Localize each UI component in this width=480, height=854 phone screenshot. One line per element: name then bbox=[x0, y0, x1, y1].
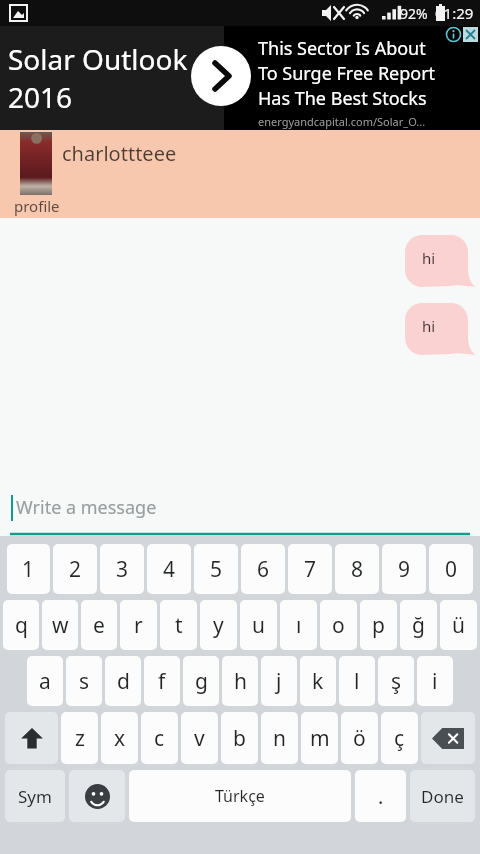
button[interactable]: x bbox=[101, 712, 138, 764]
staticText: r bbox=[134, 611, 143, 640]
button[interactable]: ş bbox=[378, 656, 414, 706]
staticText: a bbox=[39, 667, 51, 696]
button[interactable]: 7 bbox=[288, 544, 332, 594]
staticText: Türkçe bbox=[215, 785, 265, 807]
button[interactable]: ç bbox=[381, 712, 418, 764]
button[interactable]: 9 bbox=[382, 544, 426, 594]
staticText: j bbox=[276, 667, 282, 696]
button[interactable]: Advertisement bbox=[0, 26, 480, 130]
staticText: i bbox=[432, 667, 438, 696]
button[interactable]: z bbox=[61, 712, 98, 764]
button[interactable]: i bbox=[417, 656, 453, 706]
staticText: Sym bbox=[18, 785, 52, 808]
button[interactable]: Write a message bbox=[0, 483, 480, 536]
staticText: To Surge Free Report bbox=[258, 61, 436, 86]
staticText: 0 bbox=[445, 555, 458, 584]
staticText: energyandcapital.com/Solar_O... bbox=[258, 114, 426, 129]
button[interactable]: Ad info bbox=[446, 27, 461, 42]
button[interactable]: r bbox=[120, 600, 157, 650]
staticText: x bbox=[114, 724, 126, 753]
button[interactable]: f bbox=[144, 656, 180, 706]
button[interactable]: 0 bbox=[429, 544, 473, 594]
button[interactable]: Türkçe bbox=[129, 770, 351, 822]
staticText: t bbox=[175, 611, 183, 640]
button[interactable]: o bbox=[320, 600, 357, 650]
button[interactable]: 5 bbox=[194, 544, 238, 594]
button[interactable]: u bbox=[240, 600, 277, 650]
button[interactable]: y bbox=[200, 600, 237, 650]
button[interactable]: Shift bbox=[5, 712, 58, 764]
staticText: Write a message bbox=[16, 495, 157, 520]
button[interactable]: c bbox=[141, 712, 178, 764]
button[interactable]: ğ bbox=[400, 600, 437, 650]
staticText: 2 bbox=[69, 555, 82, 584]
button[interactable]: 8 bbox=[335, 544, 379, 594]
staticText: u bbox=[252, 611, 265, 640]
button[interactable]: Close ad bbox=[463, 27, 478, 42]
button[interactable]: 6 bbox=[241, 544, 285, 594]
staticText: ş bbox=[391, 667, 402, 696]
staticText: n bbox=[273, 724, 286, 753]
staticText: y bbox=[213, 611, 224, 640]
staticText: hi bbox=[422, 316, 436, 336]
button[interactable]: l bbox=[339, 656, 375, 706]
button[interactable]: a bbox=[27, 656, 63, 706]
button[interactable]: 2 bbox=[53, 544, 97, 594]
button[interactable]: . bbox=[355, 770, 406, 822]
staticText: ı bbox=[296, 611, 302, 640]
staticText: v bbox=[194, 724, 205, 753]
button[interactable]: 1 bbox=[7, 544, 50, 594]
button[interactable]: ı bbox=[280, 600, 317, 650]
button[interactable]: hi bbox=[405, 303, 477, 355]
button[interactable]: Done bbox=[410, 770, 475, 822]
button[interactable]: s bbox=[66, 656, 102, 706]
button[interactable]: hi bbox=[405, 235, 477, 287]
staticText: f bbox=[158, 667, 166, 696]
button[interactable]: p bbox=[360, 600, 397, 650]
staticText: b bbox=[233, 724, 246, 753]
staticText: 9 bbox=[398, 555, 411, 584]
button[interactable]: Sym bbox=[5, 770, 65, 822]
button[interactable]: charlottteee bbox=[0, 130, 480, 218]
button[interactable]: k bbox=[300, 656, 336, 706]
button[interactable]: h bbox=[222, 656, 258, 706]
button[interactable]: ö bbox=[341, 712, 378, 764]
button[interactable]: 3 bbox=[100, 544, 144, 594]
staticText: ö bbox=[353, 724, 366, 753]
staticText: profile bbox=[14, 196, 60, 216]
staticText: 01:29 bbox=[435, 3, 474, 23]
staticText: 6 bbox=[257, 555, 270, 584]
button[interactable]: w bbox=[42, 600, 78, 650]
staticText: ü bbox=[452, 611, 465, 640]
button[interactable]: ü bbox=[440, 600, 477, 650]
staticText: 7 bbox=[304, 555, 317, 584]
staticText: h bbox=[234, 667, 247, 696]
staticText: . bbox=[378, 783, 384, 810]
staticText: e bbox=[93, 611, 105, 640]
staticText: Solar Outlook bbox=[8, 40, 188, 78]
button[interactable]: v bbox=[181, 712, 218, 764]
staticText: hi bbox=[422, 248, 436, 268]
button[interactable]: t bbox=[160, 600, 197, 650]
button[interactable]: d bbox=[105, 656, 141, 706]
staticText: 2016 bbox=[8, 78, 73, 116]
button[interactable]: Emoji bbox=[69, 770, 125, 822]
button[interactable]: q bbox=[3, 600, 39, 650]
button[interactable]: e bbox=[81, 600, 117, 650]
button[interactable]: 4 bbox=[147, 544, 191, 594]
button[interactable]: n bbox=[261, 712, 298, 764]
button[interactable]: m bbox=[301, 712, 338, 764]
staticText: c bbox=[154, 724, 165, 753]
button[interactable]: Backspace bbox=[421, 712, 475, 764]
button[interactable]: j bbox=[261, 656, 297, 706]
button[interactable]: g bbox=[183, 656, 219, 706]
staticText: 1 bbox=[22, 555, 35, 584]
staticText: k bbox=[312, 667, 324, 696]
button[interactable]: b bbox=[221, 712, 258, 764]
staticText: s bbox=[79, 667, 90, 696]
staticText: 4 bbox=[163, 555, 176, 584]
staticText: o bbox=[332, 611, 345, 640]
staticText: 92% bbox=[400, 4, 428, 23]
staticText: 5 bbox=[210, 555, 223, 584]
staticText: d bbox=[117, 667, 130, 696]
